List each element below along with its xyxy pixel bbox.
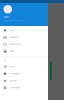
staticText: Privacy Policy [9,73,19,75]
staticText: Home [9,29,13,31]
button[interactable]: Recent Photos [0,41,48,48]
button[interactable]: Privacy Policy [0,70,48,77]
staticText: Share [9,66,14,68]
button[interactable]: Home [0,27,48,34]
staticText: More [3,60,6,62]
button[interactable]: Rate App [0,77,48,84]
button[interactable]: Albums [0,48,48,55]
staticText: Recent Photos [9,43,21,45]
staticText: Ramesh [3,16,9,18]
staticText: Rate App [9,80,16,82]
staticText: New Photos [9,36,18,38]
staticText: Get More Apps [9,87,20,89]
button[interactable]: Get More Apps [0,84,48,91]
button[interactable]: Share [0,63,48,70]
button[interactable]: New Photos [0,34,48,41]
staticText: Albums [9,50,14,52]
staticText: rameshkumar123@gmail.com [3,19,23,21]
